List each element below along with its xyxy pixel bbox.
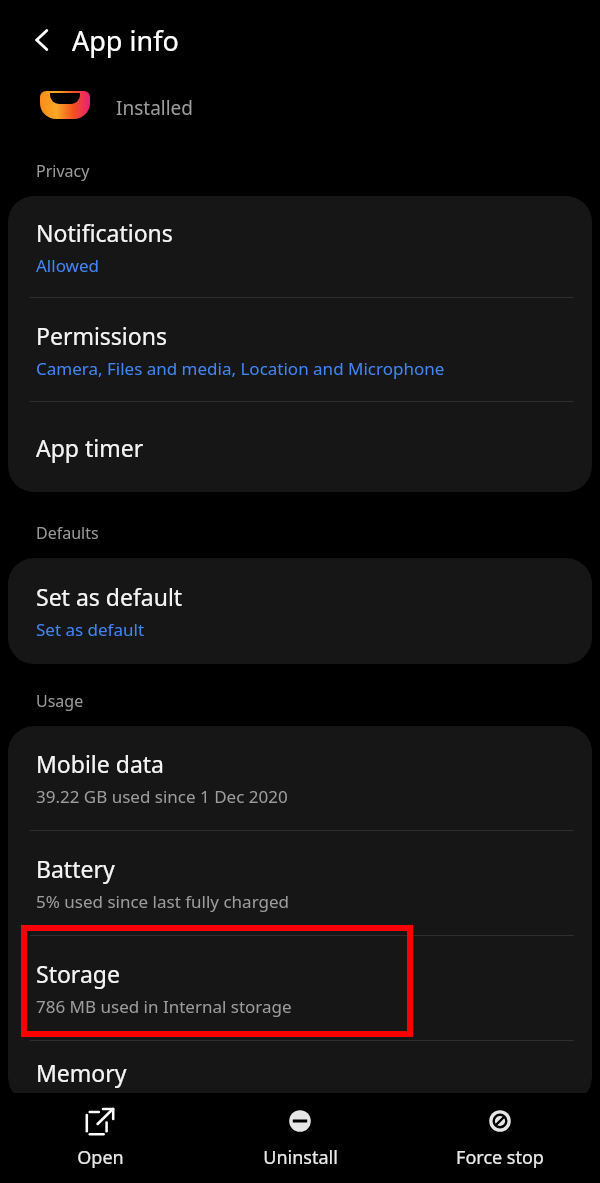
staticText: Memory — [36, 1057, 127, 1088]
staticText: Battery — [36, 853, 115, 884]
button[interactable]: Open — [0, 1093, 200, 1183]
staticText: Set as default — [36, 581, 183, 612]
staticText: Force stop — [456, 1145, 544, 1170]
staticText: Installed — [116, 95, 194, 121]
staticText: Allowed — [36, 254, 99, 277]
staticText: 786 MB used in Internal storage — [36, 995, 292, 1018]
staticText: Storage — [36, 958, 120, 989]
staticText: Camera, Files and media, Location and Mi… — [36, 357, 445, 380]
button[interactable]: Storage — [8, 936, 592, 1040]
staticText: Set as default — [36, 618, 145, 641]
button[interactable]: App timer — [8, 402, 592, 492]
staticText: App timer — [36, 432, 144, 463]
button[interactable]: Permissions — [8, 298, 592, 401]
button[interactable]: Mobile data — [8, 726, 592, 830]
button[interactable]: Back — [20, 18, 64, 62]
staticText: Open — [77, 1145, 124, 1170]
staticText: Notifications — [36, 217, 173, 248]
staticText: Privacy — [36, 160, 90, 182]
button[interactable]: Memory — [8, 1041, 592, 1103]
button[interactable]: Set as default — [8, 558, 592, 664]
staticText: Usage — [36, 690, 84, 712]
staticText: 5% used since last fully charged — [36, 890, 289, 913]
button[interactable]: Uninstall — [200, 1093, 400, 1183]
staticText: Defaults — [36, 522, 99, 544]
staticText: App info — [72, 22, 179, 59]
staticText: Uninstall — [263, 1145, 338, 1170]
button[interactable]: Notifications — [8, 196, 592, 297]
staticText: Permissions — [36, 320, 167, 351]
button[interactable]: Force stop — [400, 1093, 600, 1183]
button[interactable]: Battery — [8, 831, 592, 935]
staticText: 39.22 GB used since 1 Dec 2020 — [36, 785, 288, 808]
staticText: Mobile data — [36, 748, 164, 779]
